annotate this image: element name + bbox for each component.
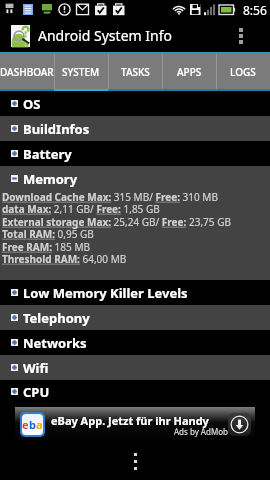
staticText: Wifi (23, 359, 49, 377)
button[interactable]: DASHBOARD (0, 54, 54, 89)
button[interactable]: CPU (0, 380, 270, 403)
staticText: OS (23, 95, 41, 113)
button[interactable]: Memory (0, 166, 270, 191)
staticText: Memory (23, 170, 78, 188)
staticText: data Max: 2,11 GB/ Free: 1,85 GB (2, 202, 160, 216)
staticText: Total RAM: 0,95 GB (2, 227, 94, 241)
button[interactable]: e (15, 407, 255, 441)
button[interactable]: LOGS (216, 54, 270, 89)
staticText: SYSTEM (62, 65, 100, 79)
staticText: b (29, 417, 36, 432)
staticText: e (22, 417, 29, 432)
staticText: Download Cache Max: 315 MB/ Free: 310 MB (2, 190, 218, 204)
staticText: CPU (23, 383, 50, 401)
button[interactable]: More options (228, 19, 254, 52)
staticText: Free RAM: 185 MB (2, 240, 90, 254)
button[interactable]: BuildInfos (0, 116, 270, 141)
button[interactable]: SYSTEM (54, 54, 108, 89)
staticText: Telephony (23, 309, 90, 327)
staticText: Battery (23, 145, 72, 163)
staticText: Low Memory Killer Levels (23, 284, 188, 302)
staticText: Networks (23, 334, 87, 352)
staticText: Ads by AdMob (174, 426, 228, 437)
staticText: eBay App. Jetzt für ihr Handy (51, 413, 209, 428)
staticText: LOGS (230, 65, 256, 79)
staticText: TASKS (121, 65, 150, 79)
staticText: APPS (177, 65, 202, 79)
staticText: Android System Info (38, 26, 172, 45)
button[interactable]: APPS (162, 54, 216, 89)
button[interactable]: TASKS (108, 54, 162, 89)
button[interactable]: Menu (113, 443, 157, 480)
button[interactable]: Low Memory Killer Levels (0, 280, 270, 305)
button[interactable]: Download (228, 413, 251, 436)
button[interactable]: OS (0, 91, 270, 116)
staticText: Threshold RAM: 64,00 MB (2, 252, 127, 266)
button[interactable]: Battery (0, 141, 270, 166)
staticText: a (36, 417, 43, 432)
staticText: 8:56 (243, 2, 267, 18)
button[interactable]: Wifi (0, 355, 270, 380)
staticText: BuildInfos (23, 120, 90, 138)
button[interactable]: Telephony (0, 305, 270, 330)
staticText: DASHBOARD (0, 65, 54, 79)
staticText: External storage Max: 25,24 GB/ Free: 23… (2, 215, 231, 229)
button[interactable]: Networks (0, 330, 270, 355)
